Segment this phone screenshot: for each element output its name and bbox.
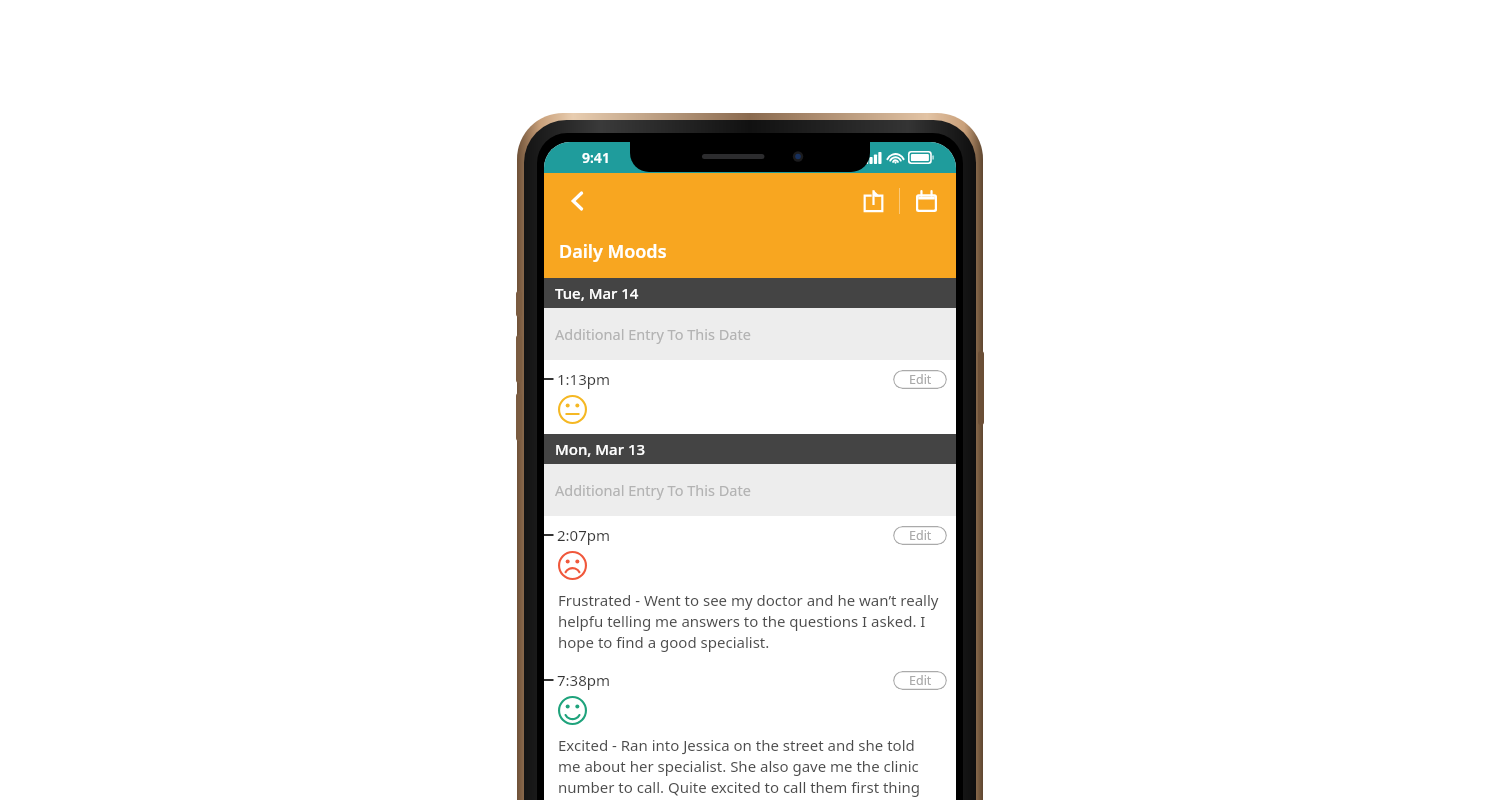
staticText: Edit (909, 371, 932, 388)
staticText: Additional Entry To This Date (555, 324, 751, 344)
staticText: Daily Moods (559, 239, 667, 264)
button[interactable]: Share (853, 181, 893, 221)
staticText: Excited - Ran into Jessica on the street… (558, 735, 940, 800)
button[interactable]: Edit (893, 671, 947, 690)
staticText: 1:13pm (557, 369, 611, 389)
button[interactable]: Additional Entry To This Date (544, 308, 956, 360)
staticText: Edit (909, 672, 932, 689)
button[interactable]: Calendar (906, 181, 946, 221)
button[interactable]: Tue, Mar 14 (544, 278, 956, 308)
button[interactable]: Edit (893, 526, 947, 545)
button[interactable]: Back (556, 179, 600, 223)
staticText: 2:07pm (557, 525, 611, 545)
button[interactable]: Mon, Mar 13 (544, 434, 956, 464)
button[interactable]: Additional Entry To This Date (544, 464, 956, 516)
staticText: Tue, Mar 14 (555, 283, 639, 303)
staticText: 7:38pm (557, 670, 611, 690)
button[interactable]: Edit (893, 370, 947, 389)
staticText: Additional Entry To This Date (555, 480, 751, 500)
staticText: 9:41 (582, 148, 610, 167)
staticText: Frustrated - Went to see my doctor and h… (558, 590, 940, 653)
staticText: Mon, Mar 13 (555, 439, 646, 459)
staticText: Edit (909, 527, 932, 544)
